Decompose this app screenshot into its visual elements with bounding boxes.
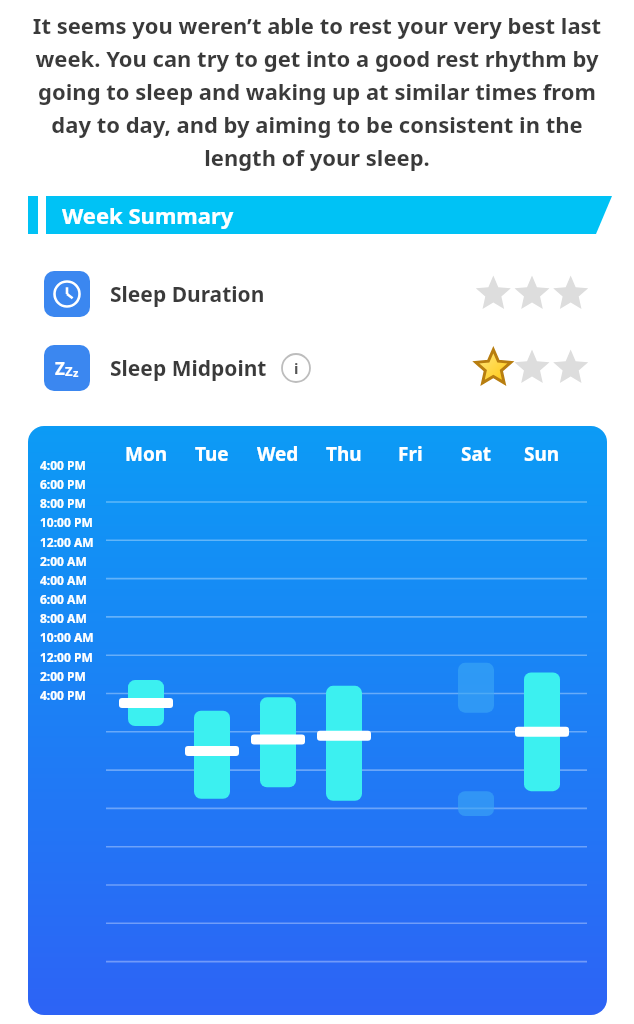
staticText: Z [65, 362, 73, 380]
staticText: i [294, 358, 299, 378]
button[interactable]: Information about Sleep Midpoint [281, 353, 311, 383]
staticText: 10:00 AM [40, 629, 94, 645]
staticText: 4:00 PM [40, 457, 86, 473]
staticText: 12:00 AM [40, 534, 94, 550]
staticText: 2:00 PM [40, 668, 86, 684]
staticText: 6:00 AM [40, 591, 87, 607]
staticText: Tue [195, 441, 229, 467]
staticText: 12:00 PM [40, 649, 93, 665]
staticText: Sleep Duration [110, 280, 265, 309]
staticText: Thu [326, 441, 362, 467]
staticText: 8:00 PM [40, 495, 86, 511]
staticText: 10:00 PM [40, 514, 93, 530]
staticText: Mon [125, 441, 168, 467]
staticText: 4:00 AM [40, 572, 87, 588]
button[interactable]: Mon [28, 426, 607, 1015]
button[interactable]: Z [0, 340, 634, 396]
staticText: z [73, 365, 79, 380]
staticText: It seems you weren’t able to rest your v… [26, 10, 608, 172]
staticText: Wed [257, 441, 299, 467]
staticText: Sun [524, 441, 560, 467]
staticText: Fri [398, 441, 423, 467]
staticText: Sat [461, 441, 492, 467]
staticText: Sleep Midpoint [110, 354, 267, 383]
staticText: Z [55, 357, 65, 380]
button[interactable]: Sleep Duration [0, 266, 634, 322]
staticText: 4:00 PM [40, 687, 86, 703]
staticText: 2:00 AM [40, 553, 87, 569]
staticText: 6:00 PM [40, 476, 86, 492]
staticText: 8:00 AM [40, 610, 87, 626]
staticText: Week Summary [62, 200, 234, 230]
